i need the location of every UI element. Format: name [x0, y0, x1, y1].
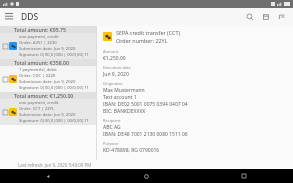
staticText: Signature: 0|00,0|000 | 00/0,00|11 [19, 52, 89, 58]
staticText: one payment, credit [19, 34, 59, 40]
staticText: Total amount: €95.75 [14, 26, 66, 33]
staticText: Originator [103, 81, 123, 86]
staticText: one payment, credit [19, 100, 59, 106]
button[interactable]: Filter [274, 9, 290, 25]
staticText: SEPA credit transfer (CCT) [116, 29, 181, 36]
staticText: Test account 1 [103, 94, 137, 101]
staticText: Submission date: Jun 9, 2020 [19, 79, 76, 85]
staticText: BIC: BANKDEXXXX [103, 108, 146, 115]
staticText: Signature: 0|00,0|000 | 00/0,00|11 [19, 118, 89, 124]
staticText: Jun 9, 2020 [103, 71, 129, 78]
staticText: ABC AG [103, 124, 121, 131]
staticText: Signature: 0|00,0|000 | 00/0,00|11 [19, 85, 89, 91]
button[interactable]: Recent apps [195, 169, 293, 183]
staticText: Order: #251 | 2230 [19, 40, 57, 46]
button[interactable]: Search [242, 9, 258, 25]
staticText: Max Mustermann [103, 87, 145, 94]
staticText: Submission date: Jun 9, 2020 [19, 46, 76, 52]
staticText: Total amount: €358.00 [14, 59, 69, 66]
staticText: IBAN: DE48 7001 2130 0080 1511 06 [103, 131, 188, 138]
button[interactable]: one payment, credit [0, 99, 96, 125]
staticText: Order: CCT | 22YL [19, 106, 55, 112]
button[interactable]: Navigation menu [0, 8, 18, 26]
staticText: IBAN: DE02 5001 0075 0394 0407 04 [103, 101, 188, 108]
staticText: €1,250.00 [103, 55, 126, 62]
staticText: Order number: 22YL [116, 37, 168, 44]
staticText: Purpose [103, 141, 119, 146]
button[interactable]: 1 payment(s), debit [0, 66, 96, 92]
staticText: KD-478898, RG 0790016 [103, 147, 160, 154]
button[interactable]: Archive [258, 9, 274, 25]
staticText: Total amount: €1,250.00 [14, 92, 74, 99]
staticText: Execution date [103, 65, 131, 70]
staticText: DDS [21, 11, 39, 23]
button[interactable]: Back [0, 169, 97, 183]
button[interactable]: Home [97, 169, 195, 183]
staticText: Order: CDC | 222K [19, 73, 56, 79]
staticText: Amount [103, 49, 119, 54]
staticText: Recipient [103, 118, 121, 123]
button[interactable]: one payment, credit [0, 33, 96, 59]
staticText: Last refresh: Jun 9, 2020 5:40:00 PM [18, 162, 92, 168]
staticText: 1 payment(s), debit [19, 67, 57, 73]
staticText: Submission date: Jun 9, 2020 [19, 112, 76, 118]
